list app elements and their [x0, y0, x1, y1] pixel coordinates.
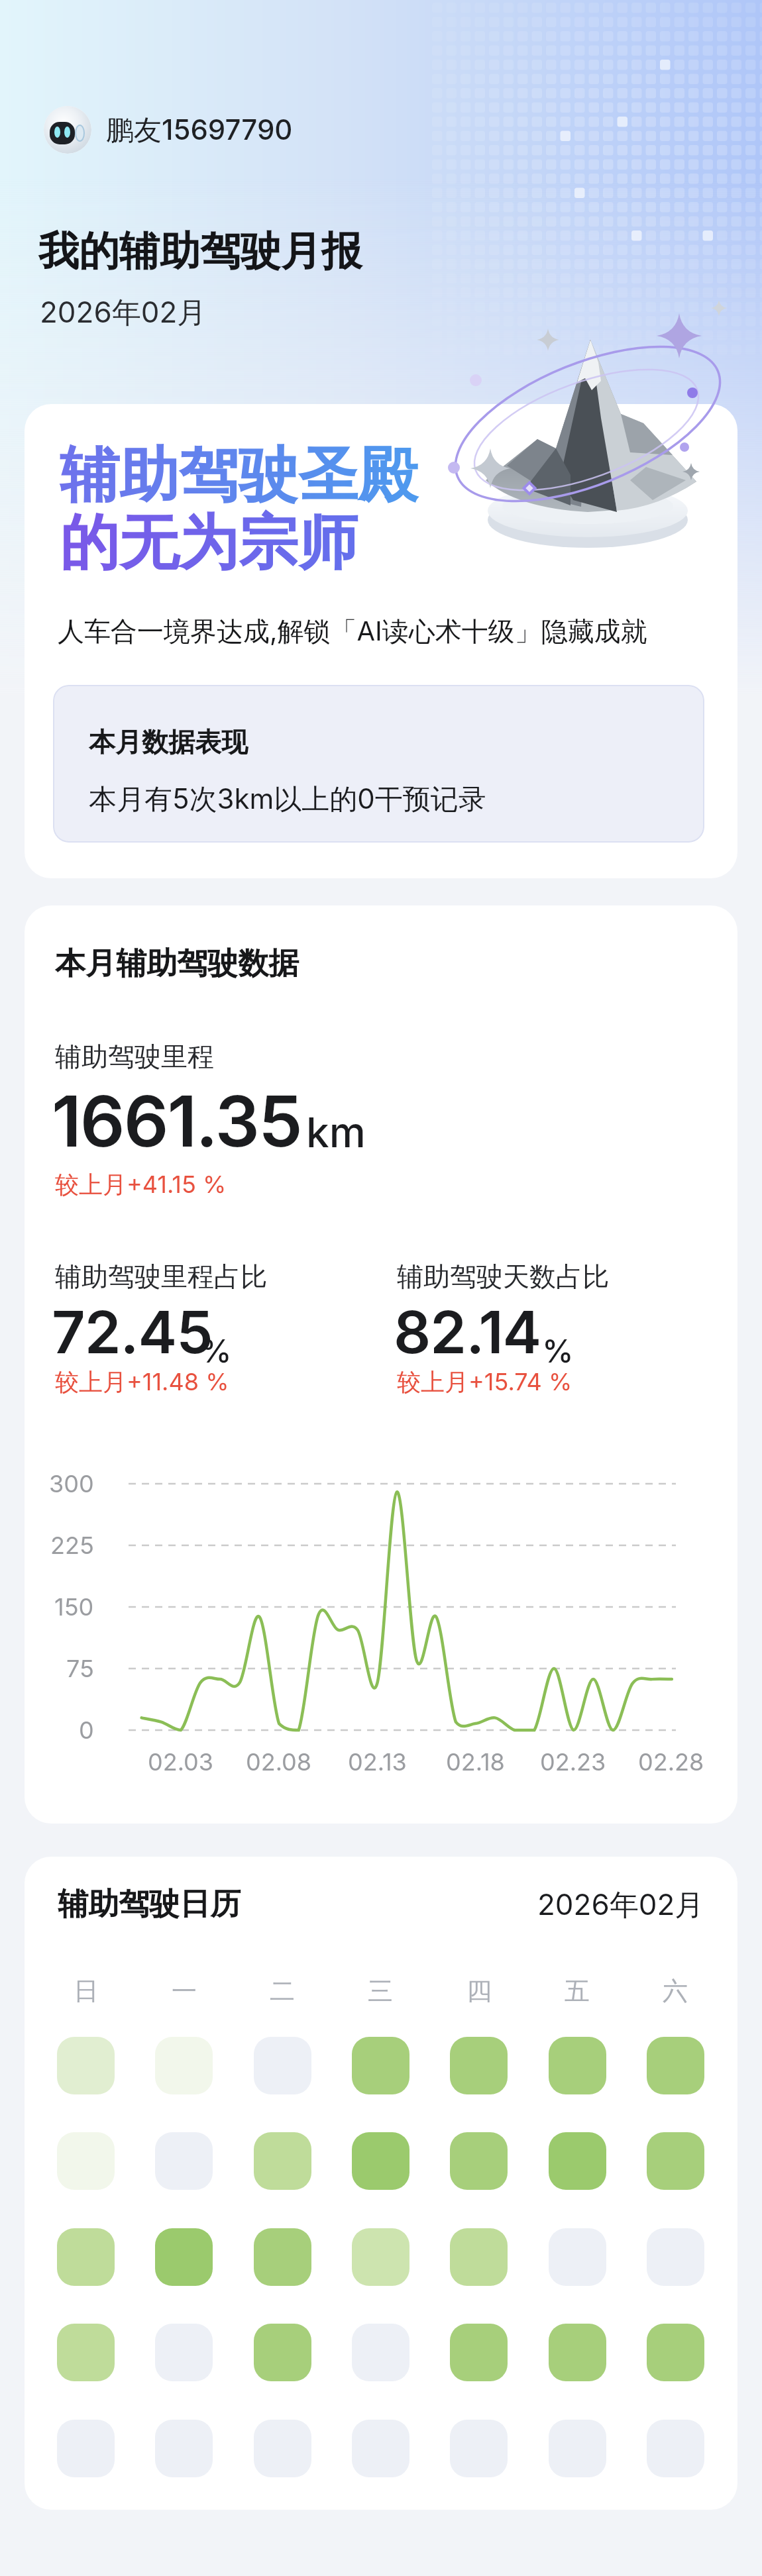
staticText: 人车合一境界达成,解锁「AI读心术十级」隐藏成就	[58, 615, 647, 648]
staticText: 1661.35	[52, 1078, 301, 1163]
staticText: 辅助驾驶日历	[58, 1885, 241, 1924]
staticText: 我的辅助驾驶月报	[38, 226, 362, 277]
staticText: 辅助驾驶里程	[55, 1040, 214, 1073]
staticText: 三	[368, 1975, 393, 2007]
button[interactable]	[254, 2228, 311, 2286]
staticText: 02.13	[348, 1747, 407, 1777]
button[interactable]	[155, 2324, 213, 2381]
button[interactable]	[450, 2324, 508, 2381]
staticText: 本月数据表现	[89, 725, 248, 758]
button[interactable]	[155, 2132, 213, 2190]
button[interactable]	[57, 2420, 115, 2477]
button[interactable]	[57, 2324, 115, 2381]
button[interactable]	[450, 2228, 508, 2286]
button[interactable]	[155, 2228, 213, 2286]
button[interactable]	[155, 2037, 213, 2094]
button[interactable]	[450, 2420, 508, 2477]
button[interactable]	[352, 2132, 409, 2190]
staticText: 日	[74, 1975, 99, 2007]
staticText: 02.28	[638, 1747, 704, 1777]
staticText: 辅助驾驶圣殿	[60, 438, 417, 513]
button[interactable]	[57, 2132, 115, 2190]
button[interactable]	[647, 2037, 704, 2094]
staticText: 鹏友15697790	[106, 113, 293, 148]
staticText: 的无为宗师	[60, 505, 358, 580]
button[interactable]	[450, 2132, 508, 2190]
staticText: 较上月+11.48 %	[55, 1367, 229, 1398]
button[interactable]	[352, 2228, 409, 2286]
button[interactable]	[549, 2324, 606, 2381]
staticText: 300	[49, 1469, 94, 1498]
staticText: 较上月+41.15 %	[55, 1170, 227, 1200]
button[interactable]	[549, 2132, 606, 2190]
button[interactable]	[549, 2037, 606, 2094]
staticText: 02.23	[540, 1747, 606, 1777]
button[interactable]	[352, 2420, 409, 2477]
staticText: 225	[50, 1531, 94, 1560]
staticText: 较上月+15.74 %	[397, 1367, 572, 1398]
button[interactable]	[25, 1857, 737, 2510]
staticText: 72.45	[52, 1297, 213, 1367]
button[interactable]	[647, 2132, 704, 2190]
staticText: 本月有5次3km以上的0干预记录	[89, 782, 486, 817]
button[interactable]	[254, 2132, 311, 2190]
staticText: km	[306, 1108, 366, 1157]
button[interactable]	[254, 2324, 311, 2381]
staticText: 辅助驾驶天数占比	[397, 1260, 609, 1293]
button[interactable]	[25, 905, 737, 1824]
staticText: 五	[565, 1975, 590, 2007]
button[interactable]	[647, 2228, 704, 2286]
button[interactable]	[549, 2420, 606, 2477]
staticText: 0	[79, 1716, 94, 1745]
staticText: 82.14	[394, 1297, 541, 1367]
button[interactable]	[57, 2228, 115, 2286]
button[interactable]	[549, 2228, 606, 2286]
button[interactable]	[352, 2037, 409, 2094]
button[interactable]	[647, 2324, 704, 2381]
button[interactable]	[254, 2420, 311, 2477]
staticText: 02.08	[246, 1747, 312, 1777]
button[interactable]	[254, 2037, 311, 2094]
staticText: %	[542, 1331, 574, 1370]
staticText: 02.03	[148, 1747, 214, 1777]
staticText: 辅助驾驶里程占比	[55, 1260, 267, 1293]
staticText: 2026年02月	[40, 294, 207, 331]
button[interactable]	[450, 2037, 508, 2094]
staticText: 四	[466, 1975, 492, 2007]
button[interactable]	[352, 2324, 409, 2381]
staticText: 一	[172, 1975, 197, 2007]
staticText: 本月辅助驾驶数据	[55, 945, 299, 983]
staticText: 六	[663, 1975, 688, 2007]
button[interactable]	[25, 404, 737, 878]
button[interactable]	[57, 2037, 115, 2094]
button[interactable]	[44, 106, 91, 154]
staticText: 2026年02月	[537, 1886, 704, 1924]
staticText: 75	[66, 1654, 94, 1683]
staticText: 150	[54, 1592, 94, 1622]
staticText: 二	[270, 1975, 295, 2007]
staticText: %	[200, 1331, 232, 1370]
staticText: 02.18	[446, 1747, 505, 1777]
button[interactable]	[155, 2420, 213, 2477]
button[interactable]	[647, 2420, 704, 2477]
